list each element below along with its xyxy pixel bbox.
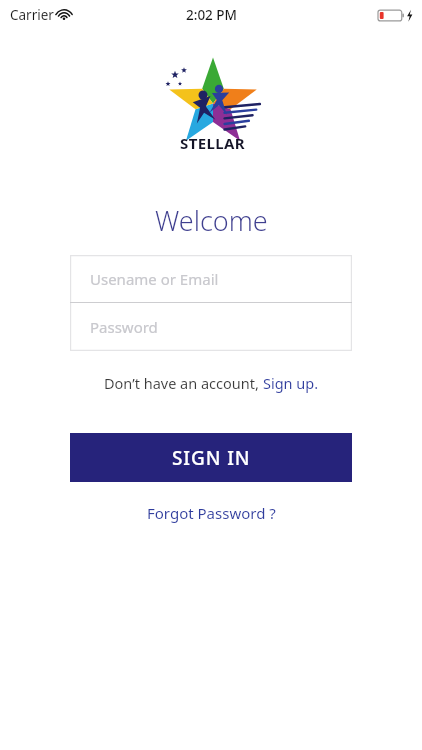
button[interactable]: Sign up. — [263, 373, 319, 393]
staticText: Sign up. — [263, 373, 319, 393]
staticText: Don’t have an account, — [104, 373, 263, 393]
staticText: SIGN IN — [172, 445, 251, 471]
button[interactable]: SIGN IN — [70, 433, 352, 482]
button[interactable]: Password — [70, 303, 352, 351]
staticText: Password — [90, 317, 158, 337]
button[interactable]: Usename or Email — [70, 255, 352, 302]
staticText: Forgot Password ? — [147, 503, 276, 523]
staticText: Usename or Email — [90, 269, 219, 289]
staticText: 2:02 PM — [186, 6, 237, 24]
staticText: Welcome — [155, 202, 268, 239]
staticText: Carrier — [10, 6, 54, 24]
button[interactable]: Forgot Password ? — [137, 499, 286, 527]
staticText: STELLAR — [180, 133, 246, 153]
